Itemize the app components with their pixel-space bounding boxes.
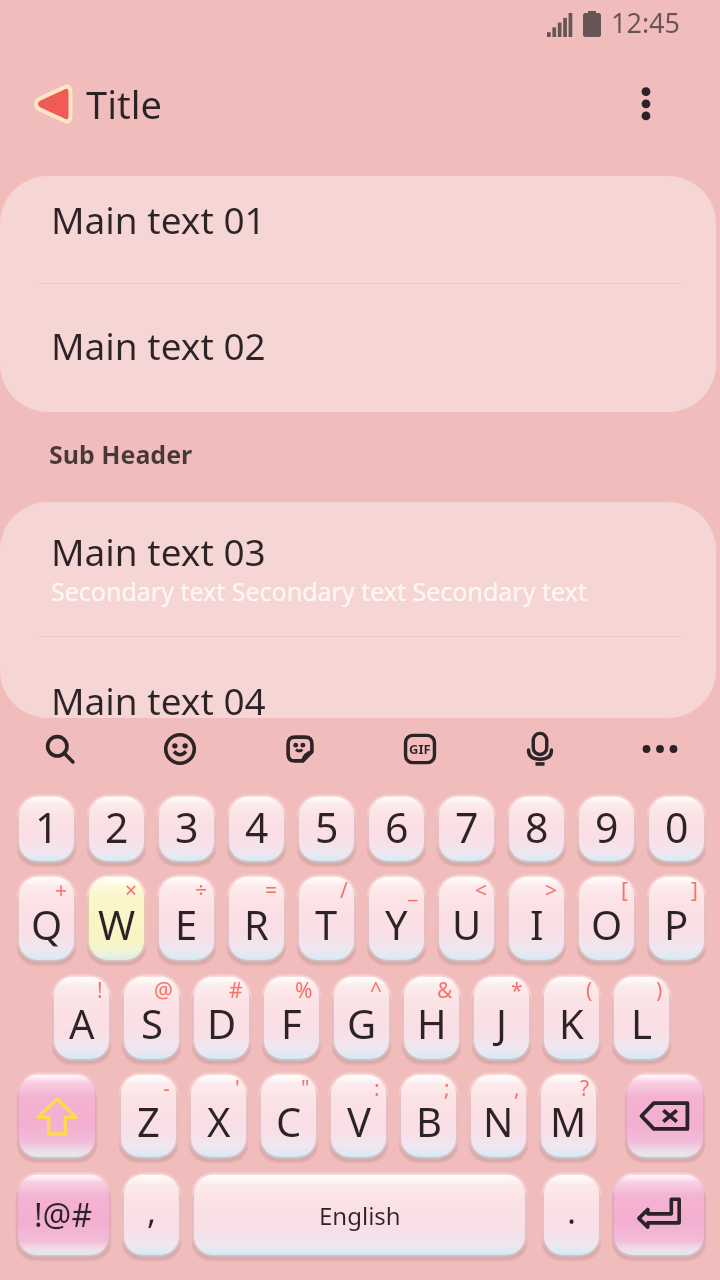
button[interactable]: C bbox=[261, 1075, 316, 1157]
staticText: D bbox=[207, 996, 237, 1050]
button[interactable]: 8 bbox=[509, 797, 564, 861]
staticText: T bbox=[315, 897, 338, 951]
staticText: P bbox=[664, 897, 689, 951]
staticText: / bbox=[340, 876, 348, 905]
button[interactable]: N bbox=[471, 1075, 526, 1157]
button[interactable]: !@# bbox=[18, 1175, 109, 1255]
button[interactable]: enter bbox=[614, 1175, 704, 1255]
button[interactable]: Z bbox=[121, 1075, 176, 1157]
staticText: = bbox=[265, 876, 278, 905]
button[interactable]: Main text 02 bbox=[0, 283, 716, 412]
staticText: J bbox=[496, 996, 507, 1050]
button[interactable]: Main text 03 bbox=[0, 502, 716, 636]
button[interactable]: T bbox=[299, 877, 354, 960]
staticText: Main text 01 bbox=[51, 194, 266, 244]
button[interactable]: 2 bbox=[89, 797, 144, 861]
button[interactable]: L bbox=[614, 977, 669, 1059]
button[interactable]: Emoji bbox=[120, 718, 240, 779]
button[interactable]: X bbox=[191, 1075, 246, 1157]
staticText: @ bbox=[154, 976, 173, 1005]
staticText: I bbox=[530, 897, 544, 951]
staticText: : bbox=[374, 1074, 380, 1103]
staticText: F bbox=[281, 996, 302, 1050]
staticText: 4 bbox=[245, 799, 269, 855]
button[interactable]: 6 bbox=[369, 797, 424, 861]
button[interactable]: U bbox=[439, 877, 494, 960]
button[interactable]: 3 bbox=[159, 797, 214, 861]
staticText: ' bbox=[235, 1074, 240, 1103]
button[interactable]: English bbox=[194, 1175, 525, 1255]
button[interactable]: shift bbox=[19, 1075, 95, 1157]
button[interactable]: 5 bbox=[299, 797, 354, 861]
button[interactable]: 1 bbox=[19, 797, 74, 861]
staticText: * bbox=[511, 976, 523, 1005]
button[interactable]: A bbox=[54, 977, 109, 1059]
button[interactable]: H bbox=[404, 977, 459, 1059]
staticText: 5 bbox=[315, 799, 339, 855]
button[interactable]: More bbox=[600, 718, 720, 779]
staticText: Sub Header bbox=[49, 437, 193, 471]
button[interactable]: Main text 01 bbox=[0, 176, 716, 283]
staticText: 1 bbox=[35, 799, 59, 855]
staticText: Main text 02 bbox=[51, 320, 266, 370]
button[interactable]: V bbox=[331, 1075, 386, 1157]
button[interactable]: Title bbox=[30, 80, 162, 128]
staticText: N bbox=[483, 1094, 514, 1148]
button[interactable]: . bbox=[544, 1175, 599, 1255]
staticText: L bbox=[631, 996, 652, 1050]
button[interactable]: W bbox=[89, 877, 144, 960]
staticText: Q bbox=[31, 897, 63, 951]
staticText: [ bbox=[621, 876, 628, 905]
button[interactable]: M bbox=[541, 1075, 596, 1157]
staticText: Main text 03 bbox=[51, 526, 266, 576]
button[interactable]: E bbox=[159, 877, 214, 960]
button[interactable]: B bbox=[401, 1075, 456, 1157]
button[interactable]: Main text 04 bbox=[0, 636, 716, 718]
button[interactable]: GIF bbox=[360, 718, 480, 779]
button[interactable]: O bbox=[579, 877, 634, 960]
staticText: ! bbox=[97, 976, 103, 1005]
staticText: B bbox=[416, 1094, 442, 1148]
staticText: ? bbox=[580, 1074, 590, 1103]
button[interactable]: , bbox=[124, 1175, 179, 1255]
button[interactable]: S bbox=[124, 977, 179, 1059]
staticText: 2 bbox=[105, 799, 129, 855]
staticText: # bbox=[229, 976, 243, 1005]
staticText: 8 bbox=[525, 799, 549, 855]
staticText: ÷ bbox=[195, 876, 208, 905]
button[interactable]: I bbox=[509, 877, 564, 960]
button[interactable]: Q bbox=[19, 877, 74, 960]
button[interactable]: F bbox=[264, 977, 319, 1059]
button[interactable]: R bbox=[229, 877, 284, 960]
button[interactable]: 4 bbox=[229, 797, 284, 861]
staticText: R bbox=[244, 897, 269, 951]
staticText: 0 bbox=[665, 799, 689, 855]
staticText: 6 bbox=[385, 799, 409, 855]
staticText: 7 bbox=[455, 799, 479, 855]
button[interactable]: 7 bbox=[439, 797, 494, 861]
button[interactable]: D bbox=[194, 977, 249, 1059]
staticText: % bbox=[295, 976, 313, 1005]
staticText: X bbox=[207, 1094, 231, 1148]
staticText: V bbox=[347, 1094, 371, 1148]
staticText: C bbox=[276, 1094, 302, 1148]
button[interactable]: Voice input bbox=[480, 718, 600, 779]
button[interactable]: J bbox=[474, 977, 529, 1059]
button[interactable]: 0 bbox=[649, 797, 704, 861]
staticText: H bbox=[417, 996, 447, 1050]
button[interactable]: More options bbox=[622, 80, 670, 128]
button[interactable]: G bbox=[334, 977, 389, 1059]
staticText: 9 bbox=[595, 799, 619, 855]
staticText: ; bbox=[444, 1074, 450, 1103]
staticText: K bbox=[559, 996, 584, 1050]
button[interactable]: Stickers bbox=[240, 718, 360, 779]
staticText: - bbox=[163, 1074, 170, 1103]
button[interactable]: Search bbox=[0, 718, 120, 779]
button[interactable]: del bbox=[627, 1075, 703, 1157]
button[interactable]: 9 bbox=[579, 797, 634, 861]
button[interactable]: Y bbox=[369, 877, 424, 960]
button[interactable]: K bbox=[544, 977, 599, 1059]
staticText: GIF bbox=[409, 740, 431, 758]
button[interactable]: P bbox=[649, 877, 704, 960]
staticText: . bbox=[567, 1188, 577, 1234]
